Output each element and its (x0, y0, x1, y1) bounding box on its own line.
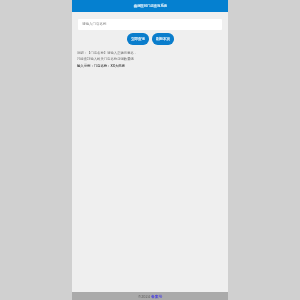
button[interactable]: 立即查询 (127, 33, 149, 45)
staticText: 刷新本页 (156, 37, 170, 41)
staticText: 立即查询 (131, 37, 145, 41)
button[interactable]: 备案号 (151, 294, 163, 299)
staticText: 输入示例：门店名称：XX大药房 (77, 63, 125, 68)
staticText: 请输入门店名称 (82, 22, 107, 26)
staticText: 只能查到输入相关门店名称店铺数量哦 (77, 57, 134, 61)
staticText: ©2024 (138, 294, 151, 299)
button[interactable]: 刷新本页 (152, 33, 174, 45)
staticText: 鑫康医药门店查询系统 (134, 4, 167, 8)
staticText: 说明：【门店名称】请输入正确完整名， (77, 51, 138, 55)
button[interactable]: 请输入门店名称 (78, 19, 222, 30)
